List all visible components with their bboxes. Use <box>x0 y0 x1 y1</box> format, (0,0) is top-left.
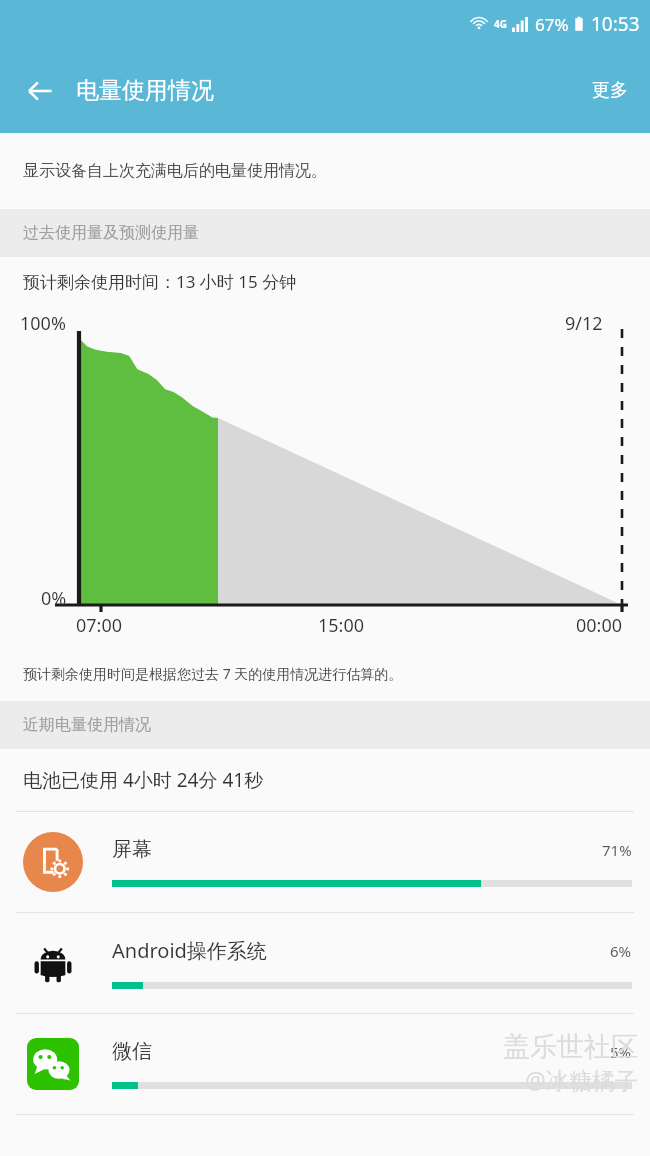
staticText: 预计剩余使用时间：13 小时 15 分钟 <box>23 270 297 293</box>
staticText: 更多 <box>592 79 628 102</box>
staticText: 近期电量使用情况 <box>23 715 151 735</box>
staticText: 71% <box>602 840 632 860</box>
staticText: 5% <box>610 1042 632 1062</box>
staticText: 过去使用量及预测使用量 <box>23 223 199 243</box>
staticText: 10:53 <box>591 11 640 37</box>
staticText: 15:00 <box>318 613 365 638</box>
button[interactable]: 微信 <box>0 1014 650 1114</box>
staticText: @冰糖橘子 <box>525 1064 638 1095</box>
staticText: 显示设备自上次充满电后的电量使用情况。 <box>23 161 327 181</box>
staticText: 00:00 <box>576 613 623 638</box>
staticText: 6% <box>610 941 632 961</box>
staticText: 屏幕 <box>112 837 152 862</box>
staticText: Android操作系统 <box>112 937 267 964</box>
staticText: 电量使用情况 <box>76 76 214 105</box>
staticText: 4G <box>494 17 507 31</box>
staticText: 9/12 <box>565 311 603 336</box>
button[interactable]: 更多 <box>570 65 650 116</box>
staticText: 100% <box>20 311 66 336</box>
button[interactable]: Back <box>14 65 66 117</box>
staticText: 67% <box>535 13 569 36</box>
staticText: 预计剩余使用时间是根据您过去 7 天的使用情况进行估算的。 <box>23 664 403 683</box>
staticText: 盖乐世社区 <box>503 1030 638 1064</box>
staticText: 微信 <box>112 1039 152 1064</box>
staticText: 电池已使用 4小时 24分 41秒 <box>23 767 264 793</box>
staticText: 0% <box>41 586 67 611</box>
button[interactable]: 屏幕 <box>0 812 650 912</box>
staticText: 07:00 <box>76 613 123 638</box>
button[interactable]: Android操作系统 <box>0 913 650 1013</box>
